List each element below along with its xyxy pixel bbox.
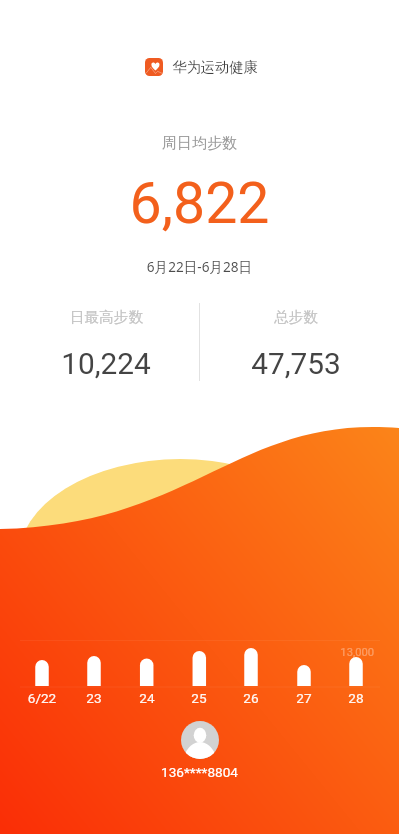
staticText: 25: [175, 690, 223, 706]
staticText: 23: [70, 690, 118, 706]
button[interactable]: 日最高步数: [26, 306, 186, 381]
staticText: 28: [332, 690, 380, 706]
button[interactable]: 23: [70, 640, 118, 706]
staticText: 10,224: [61, 346, 151, 381]
staticText: 总步数: [274, 308, 318, 326]
staticText: 6月22日-6月28日: [0, 257, 399, 276]
staticText: 6/22: [18, 690, 66, 706]
button[interactable]: 24: [123, 640, 171, 706]
staticText: 47,753: [251, 346, 341, 381]
staticText: 华为运动健康: [172, 58, 258, 76]
button[interactable]: 华为运动健康: [2, 48, 399, 86]
staticText: 6,822: [0, 170, 399, 237]
button[interactable]: 25: [175, 640, 223, 706]
staticText: 136****8804: [0, 764, 399, 780]
button[interactable]: 27: [280, 640, 328, 706]
staticText: 24: [123, 690, 171, 706]
staticText: 27: [280, 690, 328, 706]
staticText: 13,000: [235, 646, 374, 659]
button[interactable]: 28: [332, 640, 380, 706]
button[interactable]: 26: [227, 640, 275, 706]
button[interactable]: Profile: [181, 721, 219, 759]
button[interactable]: 6/22: [18, 640, 66, 706]
button[interactable]: 总步数: [216, 306, 376, 381]
staticText: 日最高步数: [70, 308, 143, 326]
staticText: 26: [227, 690, 275, 706]
staticText: 周日均步数: [0, 134, 399, 153]
